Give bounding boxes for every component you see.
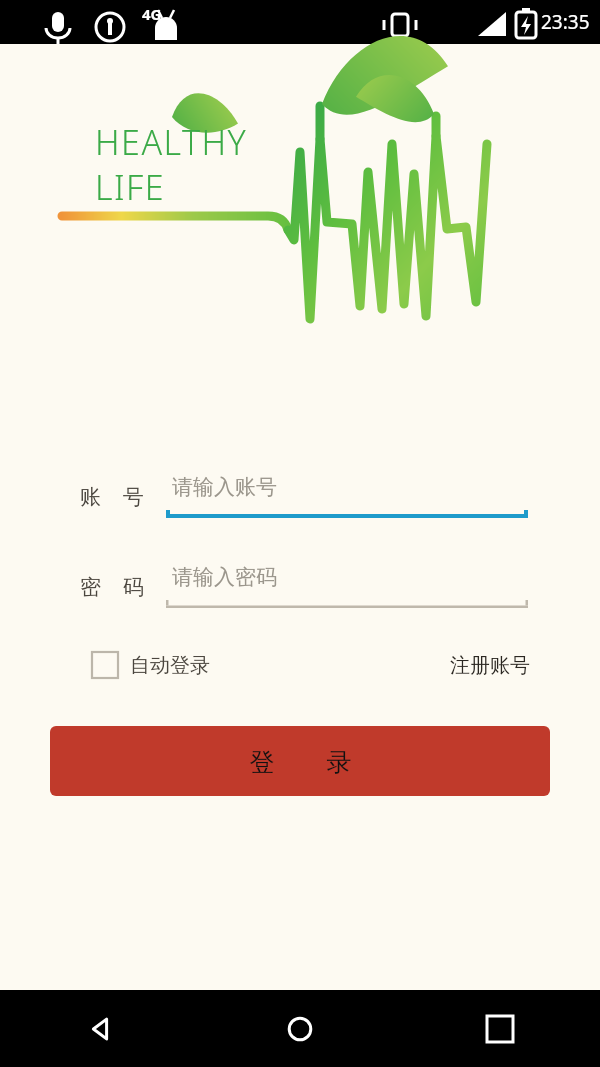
staticText: LIFE: [95, 164, 166, 210]
button[interactable]: Home: [200, 990, 400, 1067]
staticText: 23:35: [541, 9, 590, 35]
staticText: 登 录: [249, 744, 352, 778]
button[interactable]: 登 录: [50, 726, 550, 796]
button[interactable]: 自动登录: [92, 646, 210, 684]
staticText: 请输入密码: [172, 564, 277, 590]
staticText: HEALTHY: [95, 119, 248, 165]
button[interactable]: Back: [0, 990, 200, 1067]
staticText: 密 码: [80, 572, 144, 601]
staticText: 4G: [142, 4, 162, 24]
staticText: 自动登录: [130, 653, 210, 678]
staticText: 注册账号: [450, 653, 530, 678]
staticText: 账 号: [80, 482, 144, 511]
button[interactable]: Recents: [400, 990, 600, 1067]
staticText: 请输入账号: [172, 474, 277, 500]
button[interactable]: 请输入密码: [166, 564, 528, 608]
button[interactable]: 请输入账号: [166, 474, 528, 518]
button[interactable]: 注册账号: [448, 647, 532, 684]
